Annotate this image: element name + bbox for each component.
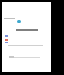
button[interactable]: Logo (17, 20, 21, 23)
